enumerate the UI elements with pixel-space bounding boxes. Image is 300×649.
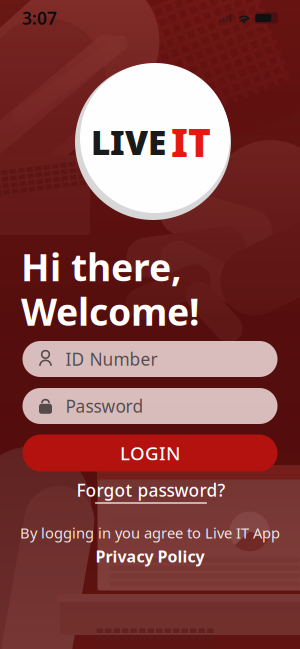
staticText: LOGIN [120,441,180,465]
staticText: ID Number [65,347,157,370]
button[interactable]: ID Number [22,341,277,377]
staticText: Privacy Policy [95,546,204,567]
staticText: Hi there, [21,242,182,291]
staticText: Password [65,394,143,417]
staticText: IT [171,116,211,168]
staticText: Forgot password? [76,478,225,501]
button[interactable]: Forgot password? [76,478,225,504]
staticText: LIVE [91,120,166,164]
button[interactable]: Privacy Policy [95,546,204,567]
staticText: Welcome! [21,286,200,336]
button[interactable]: LOGIN [22,434,277,471]
staticText: 3:07 [22,6,57,29]
button[interactable]: Password [22,388,277,424]
staticText: By logging in you agree to Live IT App [20,523,280,543]
